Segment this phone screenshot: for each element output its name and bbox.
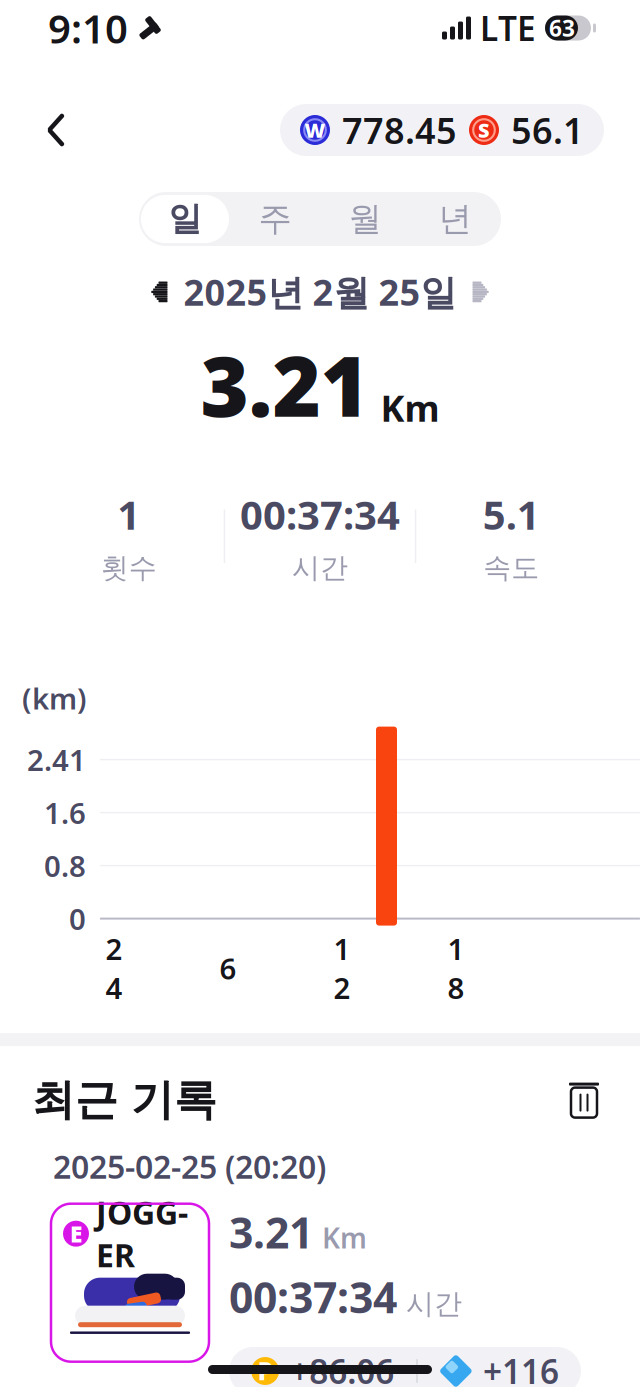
- staticText: 횟수: [101, 551, 157, 585]
- button[interactable]: Previous day: [131, 269, 183, 315]
- staticText: 778.45: [342, 106, 457, 154]
- staticText: 3.21: [200, 330, 368, 440]
- staticText: 주: [258, 198, 291, 239]
- staticText: Km: [380, 384, 439, 432]
- staticText: +86.06: [290, 1349, 394, 1387]
- button[interactable]: Delete records: [556, 1072, 612, 1128]
- button[interactable]: 월: [320, 193, 410, 245]
- staticText: 56.1: [511, 106, 584, 154]
- staticText: 일: [168, 198, 201, 239]
- staticText: 00:37:34: [240, 488, 400, 541]
- button[interactable]: Back: [26, 100, 86, 160]
- staticText: 시간: [292, 551, 348, 585]
- staticText: 1: [117, 488, 140, 541]
- staticText: 2025년 2월 25일: [183, 268, 456, 316]
- button[interactable]: W: [280, 104, 604, 156]
- staticText: 12: [333, 929, 350, 1007]
- staticText: 시간: [406, 1287, 462, 1321]
- staticText: 9:10: [48, 1, 128, 54]
- staticText: 3.21: [229, 1204, 313, 1260]
- button[interactable]: 년: [410, 193, 500, 245]
- staticText: 2025-02-25 (20:20): [53, 1145, 326, 1188]
- staticText: 5.1: [483, 488, 540, 541]
- staticText: 2.41: [27, 740, 86, 779]
- button[interactable]: 일: [140, 193, 230, 245]
- staticText: 0: [69, 899, 86, 938]
- staticText: W: [304, 117, 325, 143]
- staticText: E: [70, 1219, 82, 1249]
- staticText: 년: [438, 198, 471, 239]
- staticText: 1.6: [44, 793, 86, 832]
- staticText: LTE: [480, 6, 536, 50]
- button[interactable]: 주: [230, 193, 320, 245]
- staticText: 24: [105, 929, 122, 1007]
- staticText: S: [478, 117, 490, 143]
- staticText: 18: [447, 929, 464, 1007]
- staticText: 속도: [483, 551, 539, 585]
- staticText: (km): [22, 679, 87, 718]
- staticText: +116: [483, 1349, 559, 1387]
- staticText: 6: [219, 949, 236, 988]
- staticText: 63: [549, 13, 575, 43]
- staticText: JOGGER: [96, 1191, 188, 1276]
- staticText: Km: [322, 1219, 367, 1256]
- button[interactable]: 2025-02-25 (20:20): [33, 1154, 607, 1364]
- staticText: 00:37:34: [229, 1268, 397, 1325]
- staticText: 월: [348, 198, 381, 239]
- staticText: P: [258, 1355, 273, 1387]
- staticText: 0.8: [44, 846, 86, 885]
- button[interactable]: Next day: [456, 269, 508, 315]
- staticText: 최근 기록: [32, 1074, 217, 1126]
